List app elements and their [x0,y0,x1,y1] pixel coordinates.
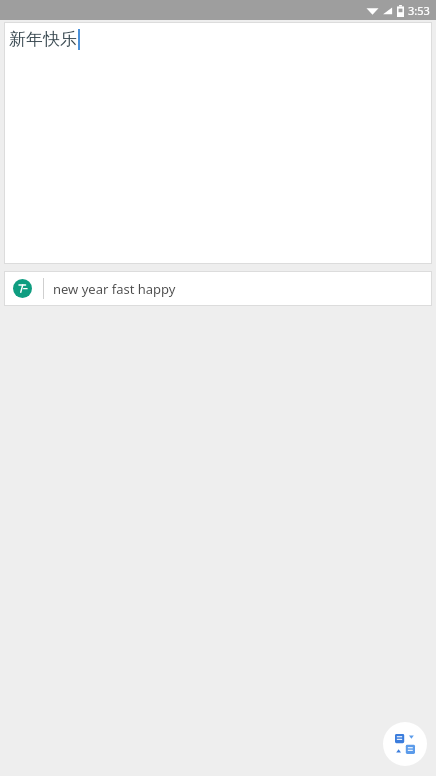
staticText: 新年快乐 [9,29,77,50]
button[interactable]: new year fast happy [4,271,432,306]
staticText: new year fast happy [53,280,176,298]
button[interactable]: Translate [383,722,427,766]
staticText: 3:53 [408,3,430,18]
button[interactable]: 新年快乐 [4,22,432,264]
